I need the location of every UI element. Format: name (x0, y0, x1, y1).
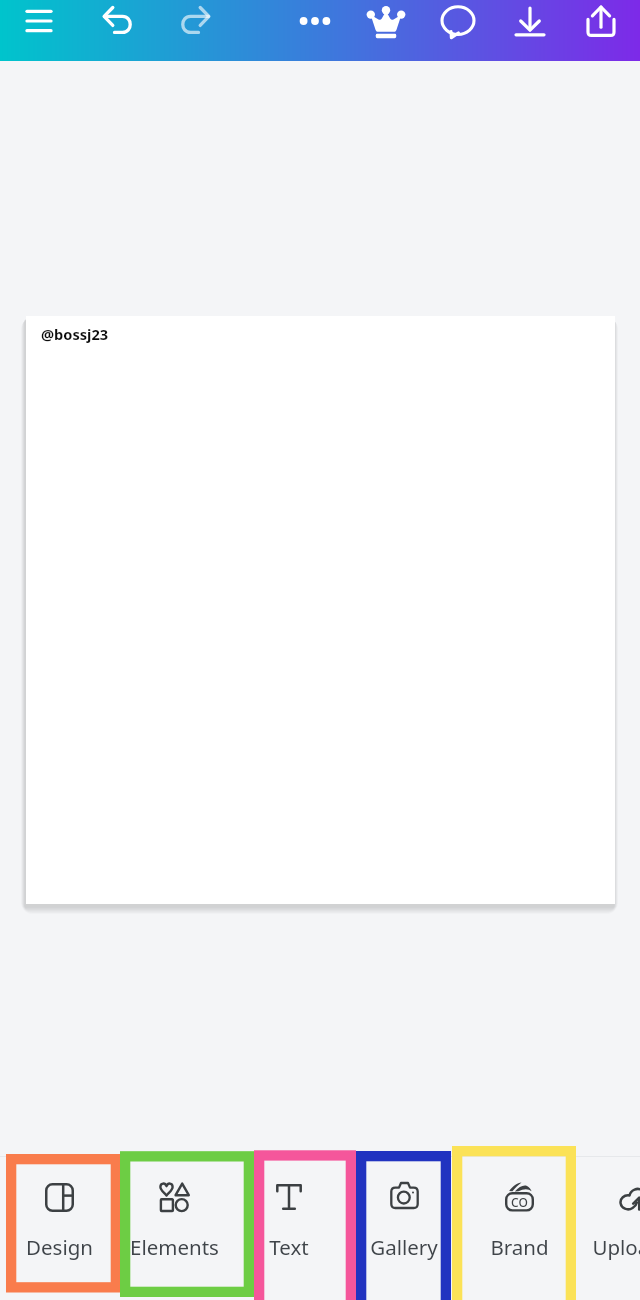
button[interactable]: Design (2, 1157, 116, 1300)
button[interactable]: Download (505, 0, 555, 47)
button[interactable]: CO (462, 1157, 576, 1300)
staticText: Design (26, 1233, 93, 1261)
staticText: Gallery (370, 1233, 438, 1261)
button[interactable]: @bossj23 (26, 316, 615, 904)
staticText: Brand (490, 1233, 549, 1261)
staticText: @bossj23 (41, 324, 109, 344)
staticText: CO (511, 1194, 528, 1210)
button[interactable]: Elements (117, 1157, 231, 1300)
button[interactable]: Upgrade to Pro (361, 0, 411, 46)
staticText: Uploads (592, 1233, 640, 1261)
button[interactable]: Menu (14, 0, 64, 46)
staticText: Text (269, 1233, 309, 1261)
button[interactable]: Share (576, 0, 626, 46)
button[interactable]: Text (232, 1157, 346, 1300)
button[interactable]: Undo (94, 0, 144, 45)
button[interactable]: More options (290, 0, 340, 46)
button[interactable]: Uploads (575, 1157, 640, 1300)
button[interactable]: Redo (169, 0, 219, 45)
button[interactable]: Comments (433, 0, 483, 47)
staticText: Elements (130, 1233, 219, 1261)
button[interactable]: Gallery (347, 1157, 461, 1300)
